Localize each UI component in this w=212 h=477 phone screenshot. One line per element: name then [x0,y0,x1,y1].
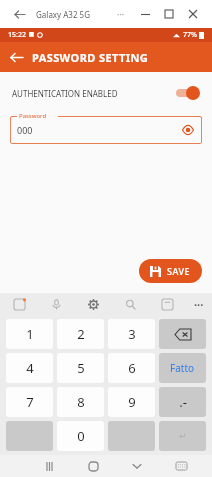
staticText: 77% [183,30,197,40]
staticText: 4 [26,359,34,377]
staticText: 1 [26,325,34,343]
button[interactable]: 4 [6,353,53,383]
button[interactable]: Back [10,5,28,23]
button[interactable]: Voice input [38,293,75,315]
button[interactable]: 2 [57,319,104,349]
button[interactable]: 1 [6,319,53,349]
button[interactable]: Close [184,5,202,23]
staticText: 3 [128,325,136,343]
button[interactable]: Maximize [160,5,178,23]
button[interactable]: Navigate up [0,42,32,72]
staticText: 2 [77,325,85,343]
button[interactable]: Search [112,293,149,315]
staticText: AUTHENTICATION ENABLED [12,88,118,99]
button[interactable]: 8 [57,387,104,417]
button[interactable]: AUTHENTICATION ENABLED [0,82,212,104]
staticText: ··· [194,297,204,312]
staticText: 000 [17,124,33,136]
button[interactable]: More [112,5,130,23]
button[interactable]: 0 [57,421,104,451]
button[interactable]: Settings [75,293,112,315]
staticText: SAVE [167,265,191,277]
staticText: PASSWORD SETTING [32,50,149,65]
button[interactable]: SAVE [139,259,202,283]
staticText: 8 [77,393,85,411]
button[interactable]: More options [186,293,212,315]
staticText: 6 [128,359,136,377]
staticText: 5 [77,359,85,377]
staticText: ··· [117,8,125,20]
staticText: 0 [77,427,85,445]
staticText: 7 [26,393,34,411]
button[interactable]: 000 [10,116,202,144]
staticText: .- [179,393,187,411]
button[interactable]: Hide keyboard [115,455,159,477]
staticText: 15:22 [8,30,26,40]
staticText: Galaxy A32 5G [36,9,90,20]
button[interactable]: .- [159,387,206,417]
button[interactable]: Keyboard layout [159,455,203,477]
button[interactable]: Toggle password visibility [181,123,195,137]
staticText: 9 [128,393,136,411]
button[interactable]: Backspace [159,319,206,349]
button[interactable]: 6 [108,353,155,383]
staticText: Password [19,112,47,120]
staticText: ↵ [179,431,187,441]
button[interactable]: Stickers [0,293,38,315]
button[interactable]: Translate [149,293,186,315]
button[interactable]: Fatto [159,353,206,383]
button[interactable]: Recents [27,455,71,477]
button[interactable]: 5 [57,353,104,383]
button[interactable]: Home [71,455,115,477]
button[interactable]: 7 [6,387,53,417]
staticText: Fatto [170,361,195,375]
button[interactable]: 9 [108,387,155,417]
button[interactable]: Minimize [136,5,154,23]
button[interactable]: 3 [108,319,155,349]
